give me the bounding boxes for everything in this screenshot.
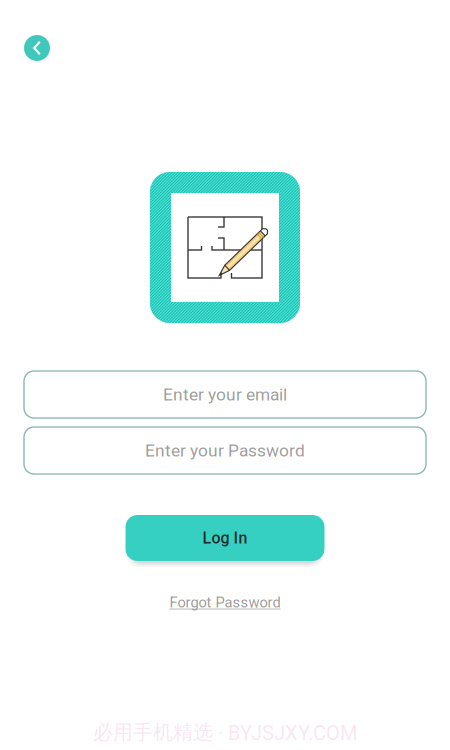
- staticText: 必用手机精选 · BYJSJXY.COM: [93, 720, 357, 745]
- button[interactable]: Forgot Password: [169, 594, 280, 611]
- button[interactable]: Back: [24, 35, 50, 61]
- staticText: Enter your Password: [145, 440, 305, 461]
- button[interactable]: Enter your Password: [24, 427, 426, 474]
- staticText: Enter your email: [163, 384, 287, 405]
- button[interactable]: Log In: [125, 512, 324, 564]
- staticText: Forgot Password: [169, 594, 280, 611]
- staticText: Log In: [202, 529, 247, 547]
- button[interactable]: Enter your email: [24, 371, 426, 418]
